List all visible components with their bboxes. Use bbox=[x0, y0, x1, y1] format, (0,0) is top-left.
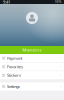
staticText: > bbox=[60, 65, 62, 68]
staticText: Moments bbox=[22, 47, 41, 53]
staticText: Favorites bbox=[7, 64, 23, 69]
button[interactable]: Stickers bbox=[0, 71, 64, 79]
staticText: Stickers bbox=[7, 73, 21, 78]
staticText: > bbox=[60, 56, 62, 60]
staticText: > bbox=[60, 85, 62, 88]
button[interactable]: Favorites bbox=[0, 63, 64, 71]
staticText: Settings bbox=[7, 84, 20, 89]
button[interactable]: Moments bbox=[0, 46, 64, 54]
staticText: 98% bbox=[55, 0, 61, 4]
staticText: 9:41 bbox=[3, 0, 10, 5]
staticText: > bbox=[60, 73, 62, 77]
button[interactable]: Settings bbox=[0, 82, 64, 91]
button[interactable]: Payment bbox=[0, 54, 64, 62]
staticText: Payment bbox=[7, 55, 22, 61]
